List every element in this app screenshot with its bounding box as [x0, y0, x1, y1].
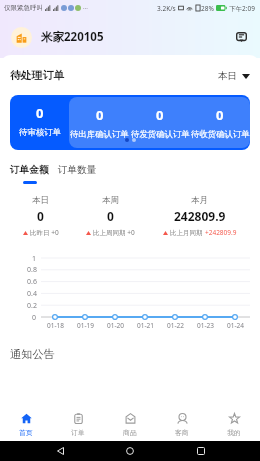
staticText: 0 [96, 106, 104, 124]
staticText: 待发货确认订单 [131, 129, 190, 140]
button[interactable]: 0 [10, 95, 69, 150]
staticText: 0 [37, 208, 44, 224]
staticText: 仅限紧急呼叫 [4, 4, 43, 12]
button[interactable]: 订单数量 [58, 164, 97, 176]
staticText: 待审核订单 [19, 127, 61, 138]
staticText: 通知公告 [10, 347, 55, 361]
staticText: 0 [156, 106, 164, 124]
staticText: ··· [83, 4, 88, 12]
staticText: 3.2K/s [157, 4, 176, 13]
staticText: 01-24 [227, 321, 244, 330]
button[interactable]: Recents [190, 441, 212, 461]
staticText: 客商 [175, 428, 189, 437]
staticText: 我的 [227, 428, 241, 437]
staticText: 米家220105 [41, 29, 104, 45]
staticText: 0.6 [27, 277, 37, 287]
staticText: 订单数量 [58, 164, 97, 176]
button[interactable]: Back [49, 441, 71, 461]
staticText: 0 [32, 313, 37, 323]
staticText: 01-20 [107, 321, 124, 330]
button[interactable]: Messages [230, 26, 252, 48]
staticText: 1 [32, 254, 37, 264]
staticText: 商品 [123, 428, 137, 437]
button[interactable]: 订单 [52, 400, 104, 441]
button[interactable]: Home [119, 441, 141, 461]
staticText: 01-22 [167, 321, 184, 330]
staticText: 下午2:09 [229, 4, 255, 13]
staticText: 01-23 [197, 321, 214, 330]
staticText: 242809.9 [174, 208, 226, 224]
staticText: 0.2 [27, 301, 37, 311]
button[interactable]: 0 [69, 97, 130, 148]
button[interactable]: 本日 [218, 70, 250, 82]
staticText: 01-18 [47, 321, 64, 330]
staticText: 01-21 [137, 321, 154, 330]
staticText: 28% [201, 4, 214, 13]
staticText: 本周 [102, 195, 119, 206]
button[interactable]: 首页 [0, 400, 52, 441]
staticText: 本日 [218, 70, 237, 82]
staticText: 01-19 [77, 321, 94, 330]
staticText: 比上周同期 +0 [93, 228, 135, 237]
button[interactable]: 客商 [156, 400, 208, 441]
staticText: 0.8 [27, 265, 37, 275]
staticText: 待处理订单 [10, 69, 64, 83]
staticText: 0 [36, 104, 44, 122]
staticText: 首页 [19, 428, 33, 437]
staticText: 订单金额 [10, 164, 49, 176]
staticText: 本日 [32, 195, 49, 206]
staticText: 本月 [191, 195, 208, 206]
button[interactable]: 商品 [104, 400, 156, 441]
staticText: 0.4 [27, 289, 37, 299]
button[interactable]: 订单金额 [10, 164, 49, 184]
staticText: 比上月同期 [170, 228, 205, 237]
staticText: 待收货确认订单 [191, 129, 250, 140]
button[interactable]: 0 [190, 97, 250, 148]
staticText: 比昨日 +0 [30, 228, 59, 237]
staticText: 0 [107, 208, 114, 224]
staticText: 0 [216, 106, 224, 124]
button[interactable]: 我的 [208, 400, 260, 441]
button[interactable]: 0 [130, 97, 190, 148]
staticText: 订单 [71, 428, 85, 437]
staticText: +242809.9 [205, 228, 237, 237]
staticText: 待出库确认订单 [70, 129, 129, 140]
